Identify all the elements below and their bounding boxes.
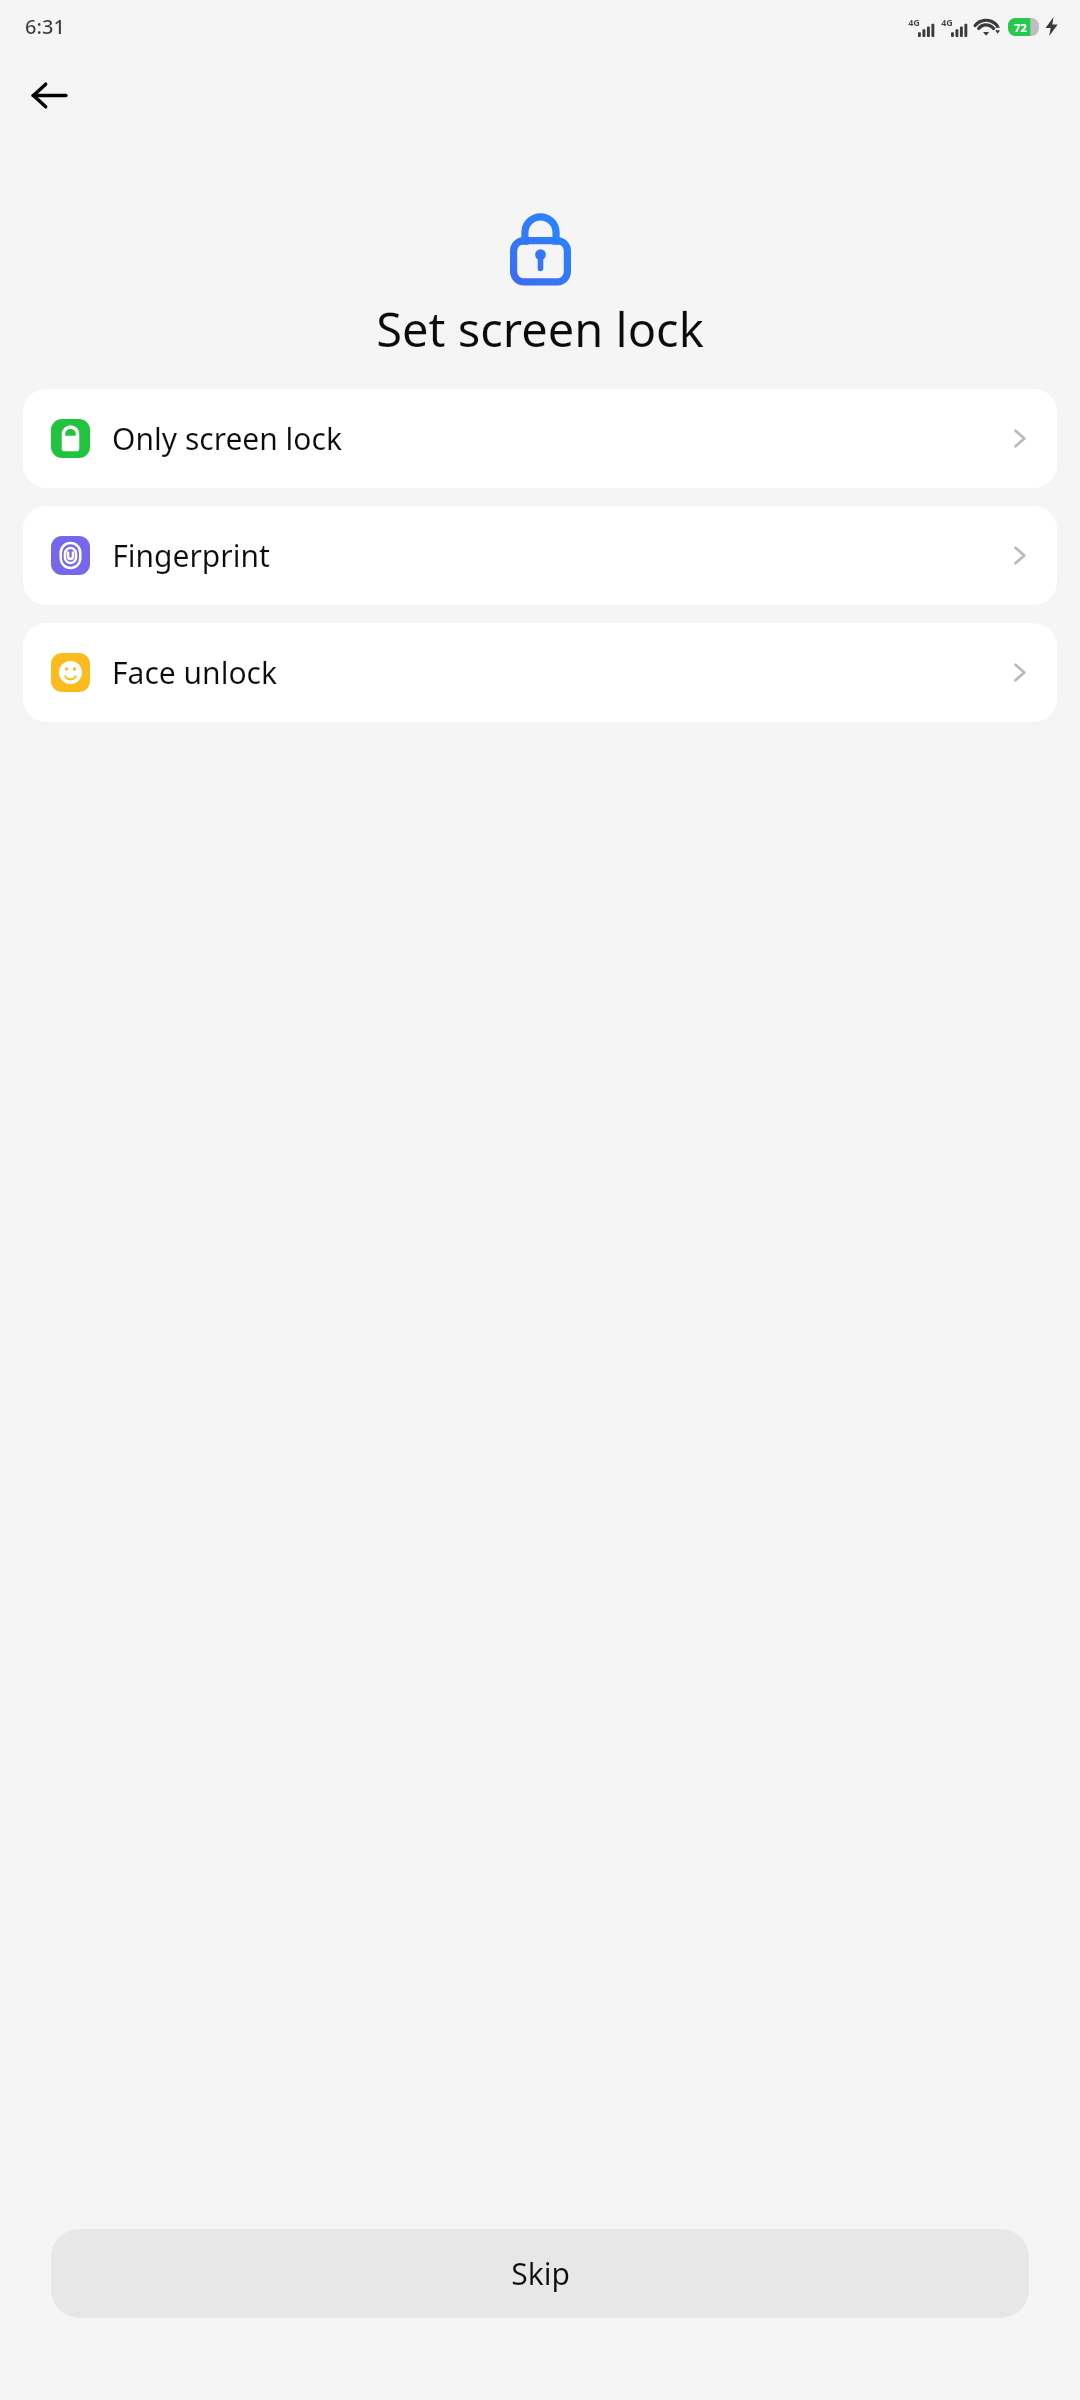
- button[interactable]: Only screen lock: [23, 389, 1057, 488]
- staticText: 4G: [908, 16, 920, 28]
- staticText: Set screen lock: [376, 297, 704, 361]
- other: Fingerprint: [1006, 542, 1033, 569]
- other: Only screen lock: [1006, 425, 1033, 452]
- staticText: Face unlock: [112, 652, 277, 693]
- staticText: Only screen lock: [112, 418, 342, 459]
- staticText: Skip: [511, 2253, 570, 2294]
- staticText: Fingerprint: [112, 535, 270, 576]
- button[interactable]: Skip: [51, 2229, 1029, 2318]
- button[interactable]: Face unlock: [23, 623, 1057, 722]
- button[interactable]: Fingerprint: [23, 506, 1057, 605]
- other: Face unlock: [1006, 659, 1033, 686]
- button[interactable]: Back: [19, 66, 77, 124]
- staticText: 4G: [941, 16, 953, 28]
- staticText: 72: [1014, 20, 1027, 35]
- staticText: 6:31: [25, 13, 65, 40]
